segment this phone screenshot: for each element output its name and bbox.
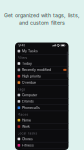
staticText: Errands <box>22 99 34 103</box>
staticText: Local Tasks <box>18 132 38 135</box>
staticText: Today <box>22 61 32 65</box>
staticText: and custom filters <box>19 20 65 26</box>
staticText: High priority <box>22 74 41 78</box>
staticText: Get organized with tags, lists, <box>4 12 80 18</box>
staticText: My Tasks <box>22 49 38 53</box>
staticText: Computer <box>22 93 37 97</box>
staticText: Filters <box>18 56 28 60</box>
button[interactable]: Fitness <box>15 142 68 149</box>
staticText: 9:41 <box>18 43 24 47</box>
staticText: Chores <box>22 137 33 141</box>
button[interactable]: Overdue <box>15 80 68 86</box>
button[interactable]: Errands <box>15 98 68 105</box>
button[interactable]: Home <box>15 117 68 123</box>
button[interactable]: High priority <box>15 73 68 79</box>
button[interactable]: Computer <box>15 92 68 98</box>
button[interactable]: Today <box>15 60 68 67</box>
staticText: Work <box>22 124 30 128</box>
staticText: Recently modified <box>22 68 51 72</box>
button[interactable]: Work <box>15 123 68 130</box>
staticText: Fitness <box>22 143 34 147</box>
button[interactable]: My Tasks <box>15 48 68 54</box>
staticText: Tags <box>18 88 26 91</box>
button[interactable]: Chores <box>15 136 68 142</box>
staticText: Places <box>18 113 29 116</box>
staticText: Overdue <box>22 81 36 85</box>
staticText: Phonecalls <box>22 106 40 110</box>
staticText: Home <box>22 118 31 122</box>
button[interactable]: Phonecalls <box>15 105 68 111</box>
button[interactable]: Recently modified <box>15 67 68 73</box>
